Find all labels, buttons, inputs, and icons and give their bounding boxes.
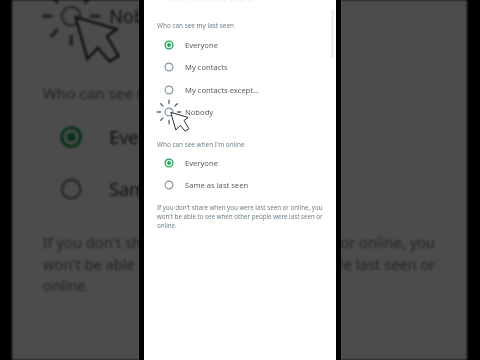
staticText: Same as last seen <box>185 180 249 190</box>
staticText: If you don't share when you were last se… <box>157 203 325 230</box>
staticText: My contacts except… <box>185 85 260 95</box>
staticText: Everyone <box>185 158 218 168</box>
staticText: Nobody <box>109 4 178 28</box>
staticText: Who can see when I'm online <box>157 140 245 149</box>
button[interactable]: Nobody <box>144 101 336 123</box>
button[interactable]: Same as last seen <box>12 163 467 215</box>
staticText: Who can see my last seen <box>157 21 234 30</box>
button[interactable]: Everyone <box>144 34 336 56</box>
staticText: Who can see when I'm online <box>43 82 251 104</box>
button[interactable]: Nobody <box>12 0 467 42</box>
staticText: Last seen and online <box>168 0 255 2</box>
staticText: My contacts <box>185 62 228 72</box>
button[interactable]: Everyone <box>144 152 336 174</box>
staticText: If you don't share when you were last se… <box>43 232 441 296</box>
button[interactable]: Same as last seen <box>144 174 336 196</box>
staticText: Everyone <box>109 125 187 149</box>
staticText: Nobody <box>185 107 214 117</box>
staticText: Everyone <box>185 40 218 50</box>
staticText: Same as last seen <box>109 177 261 201</box>
button[interactable]: My contacts <box>144 56 336 78</box>
button[interactable]: My contacts except… <box>144 79 336 101</box>
button[interactable]: Everyone <box>12 111 467 163</box>
